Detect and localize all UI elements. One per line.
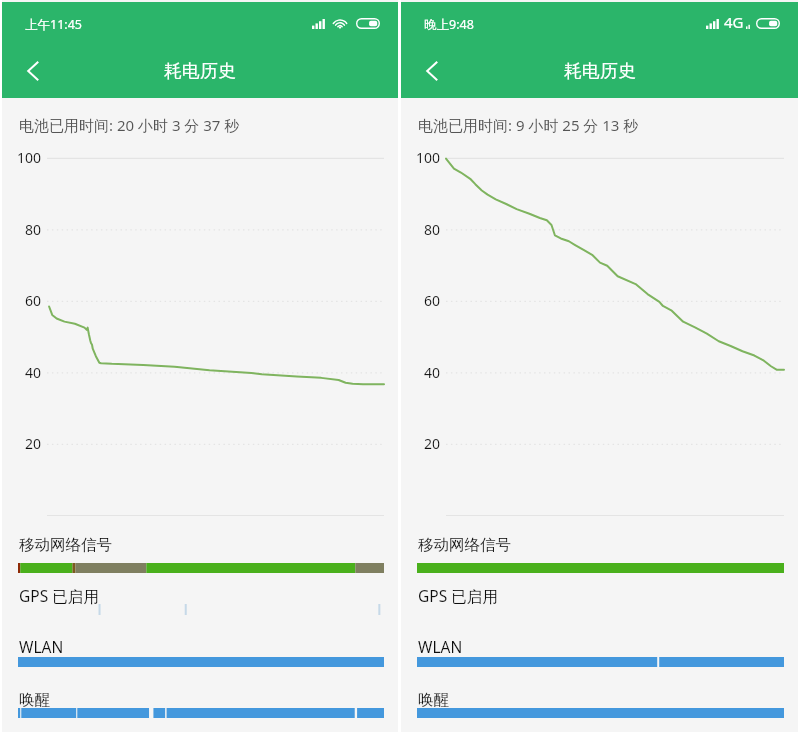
staticText: 60 xyxy=(25,291,42,310)
staticText: 移动网络信号 xyxy=(19,535,112,555)
button[interactable]: 唤醒 xyxy=(401,690,798,718)
staticText: 电池已用时间: 9 小时 25 分 13 秒 xyxy=(418,115,639,135)
button[interactable]: Back xyxy=(409,49,453,93)
staticText: 上午11:45 xyxy=(25,16,82,33)
button[interactable]: WLAN xyxy=(401,636,798,667)
staticText: 80 xyxy=(424,220,441,239)
button[interactable]: GPS 已启用 xyxy=(401,585,798,615)
staticText: 电池已用时间: 20 小时 3 分 37 秒 xyxy=(19,115,240,135)
staticText: 唤醒 xyxy=(19,690,50,710)
staticText: 唤醒 xyxy=(418,690,449,710)
staticText: GPS 已启用 xyxy=(19,585,99,606)
staticText: WLAN xyxy=(418,636,463,657)
staticText: 晚上9:48 xyxy=(424,16,474,33)
button[interactable]: WLAN xyxy=(2,636,398,667)
staticText: 100 xyxy=(416,148,441,167)
staticText: 耗电历史 xyxy=(164,60,236,83)
staticText: GPS 已启用 xyxy=(418,585,498,606)
button[interactable]: 唤醒 xyxy=(2,690,398,718)
staticText: 4G xyxy=(724,12,744,32)
staticText: 20 xyxy=(25,434,42,453)
staticText: 移动网络信号 xyxy=(418,535,511,555)
button[interactable]: 移动网络信号 xyxy=(401,535,798,573)
staticText: 40 xyxy=(25,363,42,382)
staticText: 20 xyxy=(424,434,441,453)
staticText: 80 xyxy=(25,220,42,239)
staticText: 60 xyxy=(424,291,441,310)
staticText: WLAN xyxy=(19,636,64,657)
button[interactable]: GPS 已启用 xyxy=(2,585,398,615)
staticText: 耗电历史 xyxy=(564,60,636,83)
staticText: 40 xyxy=(424,363,441,382)
button[interactable]: Back xyxy=(10,49,54,93)
staticText: 100 xyxy=(17,148,42,167)
button[interactable]: 移动网络信号 xyxy=(2,535,398,573)
